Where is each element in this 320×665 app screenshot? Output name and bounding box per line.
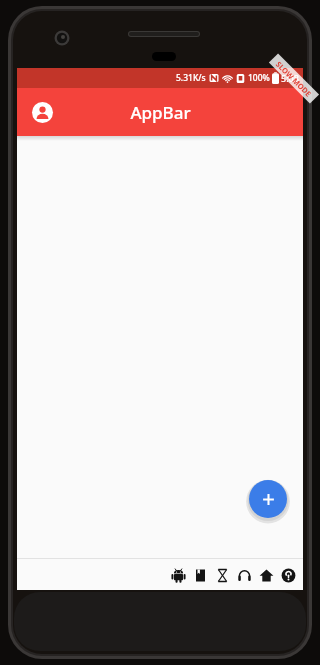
- button[interactable]: Timer: [211, 564, 233, 586]
- button[interactable]: Account: [25, 95, 59, 129]
- button[interactable]: Help: [277, 564, 299, 586]
- button[interactable]: Home: [255, 564, 277, 586]
- staticText: 5.31K/s: [176, 72, 206, 84]
- button[interactable]: Add: [249, 480, 287, 518]
- staticText: 5:08: [281, 72, 299, 84]
- staticText: AppBar: [130, 101, 191, 124]
- staticText: 100%: [248, 72, 270, 84]
- button[interactable]: Android: [167, 564, 189, 586]
- button[interactable]: Headphones: [233, 564, 255, 586]
- staticText: SLOW MODE: [274, 59, 313, 99]
- button[interactable]: Bookmark: [189, 564, 211, 586]
